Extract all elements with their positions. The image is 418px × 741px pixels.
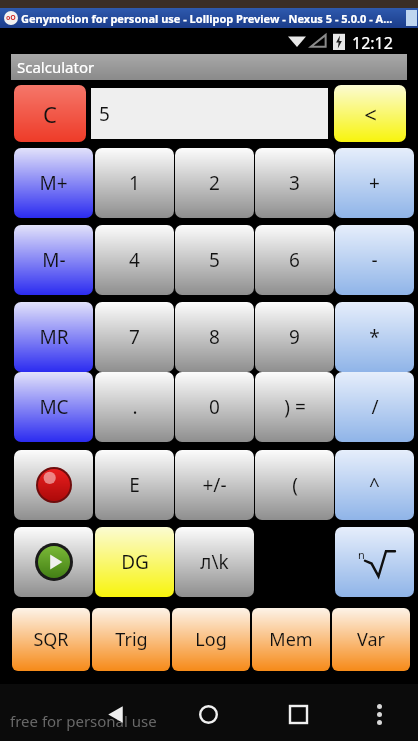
button[interactable]: Mem (252, 608, 330, 671)
staticText: / (371, 394, 379, 420)
staticText: 1 (129, 170, 140, 196)
staticText: 0 (209, 394, 220, 420)
button[interactable]: ) = (255, 372, 334, 442)
button[interactable]: Menu (357, 694, 401, 734)
button[interactable]: Home (178, 694, 238, 734)
staticText: Log (195, 627, 227, 652)
button[interactable]: 8 (175, 302, 254, 372)
button[interactable]: Back (85, 694, 145, 734)
button[interactable]: Clear (14, 85, 86, 142)
button[interactable]: 7 (95, 302, 174, 372)
staticText: Trig (115, 627, 148, 652)
staticText: free for personal use (10, 711, 157, 731)
button[interactable]: Run (14, 527, 93, 597)
button[interactable]: ( (255, 450, 334, 520)
button[interactable]: SQR (12, 608, 90, 671)
staticText: Scalculator (17, 57, 95, 77)
button[interactable]: 6 (255, 225, 334, 295)
staticText: * (369, 324, 380, 350)
staticText: 3 (289, 170, 300, 196)
button[interactable]: +/- (175, 450, 254, 520)
staticText: oO (6, 13, 16, 23)
button[interactable]: Backspace (334, 85, 406, 142)
staticText: 6 (289, 247, 300, 273)
staticText: 2 (209, 170, 220, 196)
staticText: DG (121, 549, 149, 575)
staticText: Var (357, 627, 385, 652)
staticText: n (358, 547, 365, 562)
button[interactable]: 5 (91, 88, 328, 139)
staticText: 9 (289, 324, 300, 350)
staticText: MC (39, 394, 69, 420)
staticText: 8 (209, 324, 220, 350)
staticText: Genymotion for personal use - Lollipop P… (21, 11, 393, 26)
staticText: E (129, 472, 140, 498)
button[interactable]: Trig (92, 608, 170, 671)
button[interactable]: л\k (175, 527, 254, 597)
button[interactable]: / (335, 372, 414, 442)
button[interactable]: + (335, 148, 414, 218)
button[interactable]: E (95, 450, 174, 520)
button[interactable]: 4 (95, 225, 174, 295)
staticText: M- (42, 247, 66, 273)
staticText: ^ (369, 472, 380, 498)
button[interactable]: . (95, 372, 174, 442)
staticText: 4 (129, 247, 140, 273)
staticText: 5 (209, 247, 220, 273)
button[interactable]: DG (95, 527, 174, 597)
button[interactable]: 0 (175, 372, 254, 442)
staticText: MR (39, 324, 69, 350)
staticText: +/- (202, 472, 227, 498)
staticText: + (369, 170, 380, 196)
button[interactable]: 3 (255, 148, 334, 218)
button[interactable]: Record (14, 450, 93, 520)
button[interactable]: ^ (335, 450, 414, 520)
button[interactable]: MC (14, 372, 93, 442)
button[interactable]: - (335, 225, 414, 295)
staticText: M+ (39, 170, 68, 196)
button[interactable]: MR (14, 302, 93, 372)
button[interactable]: 5 (175, 225, 254, 295)
button[interactable]: 9 (255, 302, 334, 372)
staticText: . (132, 394, 138, 420)
staticText: SQR (33, 627, 69, 652)
staticText: ( (292, 472, 298, 498)
staticText: 5 (99, 101, 110, 127)
staticText: - (371, 247, 378, 273)
staticText: ) = (284, 394, 306, 420)
button[interactable]: nth root (335, 527, 414, 597)
staticText: л\k (200, 549, 229, 575)
button[interactable]: 2 (175, 148, 254, 218)
button[interactable]: M- (14, 225, 93, 295)
button[interactable]: * (335, 302, 414, 372)
staticText: < (364, 99, 377, 129)
button[interactable]: Log (172, 608, 250, 671)
staticText: C (43, 99, 57, 129)
staticText: 12:12 (352, 32, 393, 54)
staticText: 7 (129, 324, 140, 350)
button[interactable]: 1 (95, 148, 174, 218)
button[interactable]: Recents (268, 694, 328, 734)
button[interactable]: Var (332, 608, 410, 671)
staticText: Mem (269, 627, 313, 652)
button[interactable]: M+ (14, 148, 93, 218)
